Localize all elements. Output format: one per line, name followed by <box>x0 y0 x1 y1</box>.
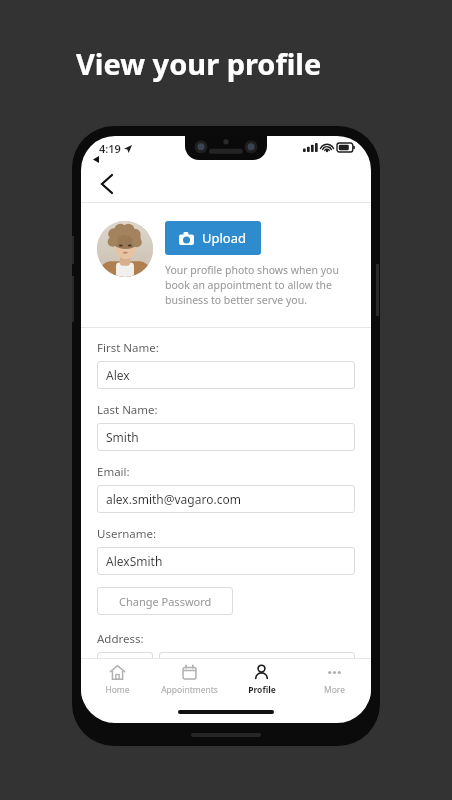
button[interactable] <box>159 652 355 678</box>
button[interactable]: alex.smith@vagaro.com <box>97 485 355 513</box>
staticText: alex.smith@vagaro.com <box>106 491 241 507</box>
staticText: Username: <box>97 526 157 542</box>
button[interactable]: Upload <box>165 221 261 255</box>
staticText: AlexSmith <box>106 553 163 569</box>
button[interactable]: AlexSmith <box>97 547 355 575</box>
button[interactable]: Change Password <box>97 587 233 615</box>
button[interactable]: More <box>298 659 371 701</box>
staticText: View your profile <box>76 44 322 83</box>
staticText: More <box>324 684 345 696</box>
staticText: Upload <box>202 229 247 247</box>
staticText: Home <box>105 684 130 696</box>
staticText: Change Password <box>119 594 212 609</box>
button[interactable]: Home <box>81 659 153 701</box>
staticText: Last Name: <box>97 402 158 418</box>
staticText: Smith <box>106 429 139 445</box>
button[interactable]: Smith <box>97 423 355 451</box>
staticText: First Name: <box>97 340 159 356</box>
staticText: Profile <box>248 684 276 696</box>
staticText: Email: <box>97 464 130 480</box>
staticText: Address: <box>97 631 144 647</box>
staticText: Alex <box>106 367 130 383</box>
staticText: Your profile photo shows when you book a… <box>165 263 355 307</box>
staticText: 4:19 <box>99 141 121 156</box>
button[interactable]: Profile <box>225 659 298 701</box>
button[interactable]: Back <box>91 168 123 200</box>
button[interactable]: Appointments <box>153 659 225 701</box>
staticText: Appointments <box>161 684 218 696</box>
button[interactable]: Alex <box>97 361 355 389</box>
button[interactable] <box>97 652 153 678</box>
